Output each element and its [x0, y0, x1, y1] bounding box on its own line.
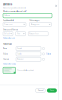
staticText: Add another unit — [3, 37, 14, 39]
button[interactable]: Row options — [42, 47, 45, 50]
button[interactable]: Rate per hour — [28, 32, 48, 36]
button[interactable]: Row options — [42, 58, 45, 60]
button[interactable]: Two litre — [16, 52, 41, 56]
staticText: Rate per hour — [29, 33, 39, 35]
staticText: Cell name — [4, 15, 10, 16]
button[interactable]: Close — [55, 4, 58, 7]
button[interactable]: Primary set — [3, 22, 26, 26]
staticText: Pick a category — [29, 20, 40, 21]
button[interactable]: Add another setup — [3, 63, 16, 65]
staticText: Unit type and flow rate — [3, 29, 18, 31]
staticText: Apply this to all cells — [3, 20, 14, 21]
staticText: Edit cells — [3, 3, 12, 6]
staticText: Flow — [17, 33, 20, 35]
staticText: Not set yet — [17, 58, 23, 60]
button[interactable]: Not set yet — [16, 57, 41, 61]
staticText: Add another setup — [3, 63, 16, 65]
staticText: Default — [4, 33, 9, 35]
staticText: What do you want to call this set of cel… — [3, 10, 27, 12]
staticText: Flow rate — [3, 58, 9, 60]
button[interactable]: Cancel — [35, 88, 45, 93]
button[interactable]: Flow — [16, 32, 26, 36]
staticText: Name — [3, 48, 7, 49]
button[interactable]: Selected cells — [3, 67, 15, 74]
staticText: Primary set — [4, 24, 12, 25]
button[interactable]: Edit units — [46, 53, 51, 55]
staticText: All categories — [30, 24, 39, 25]
staticText: Two setups — [3, 43, 12, 45]
staticText: Volume — [3, 53, 8, 55]
button[interactable]: Save — [47, 88, 57, 93]
button[interactable]: All categories — [29, 22, 51, 26]
staticText: Cancel — [38, 90, 43, 91]
button[interactable]: Sample — [16, 46, 41, 51]
staticText: These cells will be updated — [17, 69, 34, 71]
staticText: Make changes to the selected cells — [3, 7, 26, 9]
staticText: Save — [50, 90, 54, 91]
staticText: Edit units — [46, 53, 51, 55]
button[interactable]: Row options — [42, 53, 45, 55]
button[interactable]: Default — [3, 32, 13, 36]
staticText: Two litre — [17, 53, 22, 55]
staticText: Sample — [17, 48, 22, 49]
button[interactable]: Add another unit — [3, 37, 14, 39]
button[interactable]: Cell name — [3, 13, 52, 18]
